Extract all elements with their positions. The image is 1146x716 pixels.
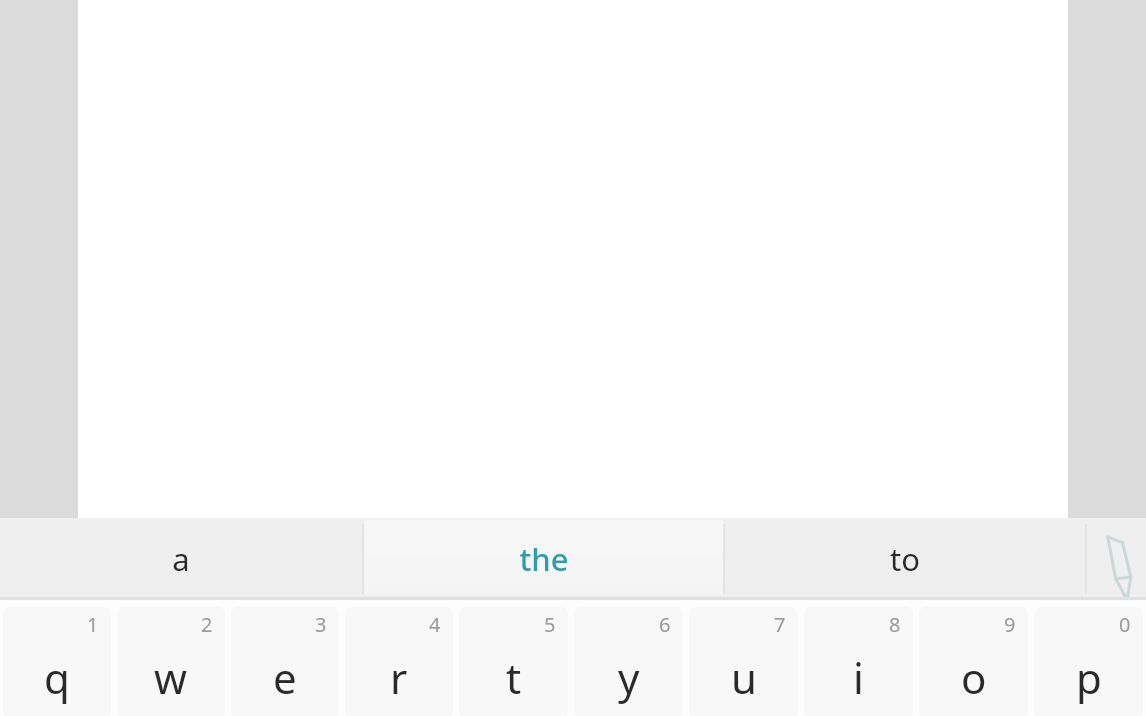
staticText: 7 xyxy=(774,611,786,638)
staticText: to xyxy=(890,538,920,580)
staticText: w xyxy=(154,649,188,706)
staticText: 5 xyxy=(544,611,556,638)
button[interactable]: 4 xyxy=(345,607,453,716)
staticText: 0 xyxy=(1119,611,1131,638)
button[interactable]: 7 xyxy=(689,607,798,716)
staticText: 3 xyxy=(315,611,327,638)
staticText: o xyxy=(961,649,987,706)
button[interactable]: Handwriting input xyxy=(1087,518,1146,600)
staticText: the xyxy=(519,538,569,580)
staticText: a xyxy=(172,538,190,580)
staticText: r xyxy=(390,649,408,706)
button[interactable]: 0 xyxy=(1034,607,1143,716)
staticText: 8 xyxy=(889,611,901,638)
button[interactable]: a xyxy=(0,518,362,600)
button[interactable]: 5 xyxy=(459,607,568,716)
staticText: u xyxy=(731,649,757,706)
button[interactable]: 9 xyxy=(919,607,1028,716)
staticText: 4 xyxy=(429,611,441,638)
button[interactable]: 1 xyxy=(3,607,111,716)
button[interactable]: 6 xyxy=(574,607,683,716)
button[interactable]: 3 xyxy=(231,607,339,716)
staticText: q xyxy=(44,649,70,706)
button[interactable]: 8 xyxy=(804,607,913,716)
staticText: 1 xyxy=(87,611,99,638)
staticText: e xyxy=(273,649,297,706)
button[interactable]: the xyxy=(364,518,723,600)
staticText: 9 xyxy=(1004,611,1016,638)
staticText: t xyxy=(506,649,522,706)
staticText: i xyxy=(853,649,864,706)
staticText: y xyxy=(618,649,640,706)
button[interactable]: to xyxy=(725,518,1085,600)
staticText: 2 xyxy=(201,611,213,638)
staticText: p xyxy=(1076,649,1102,706)
button[interactable]: 2 xyxy=(117,607,225,716)
staticText: 6 xyxy=(659,611,671,638)
